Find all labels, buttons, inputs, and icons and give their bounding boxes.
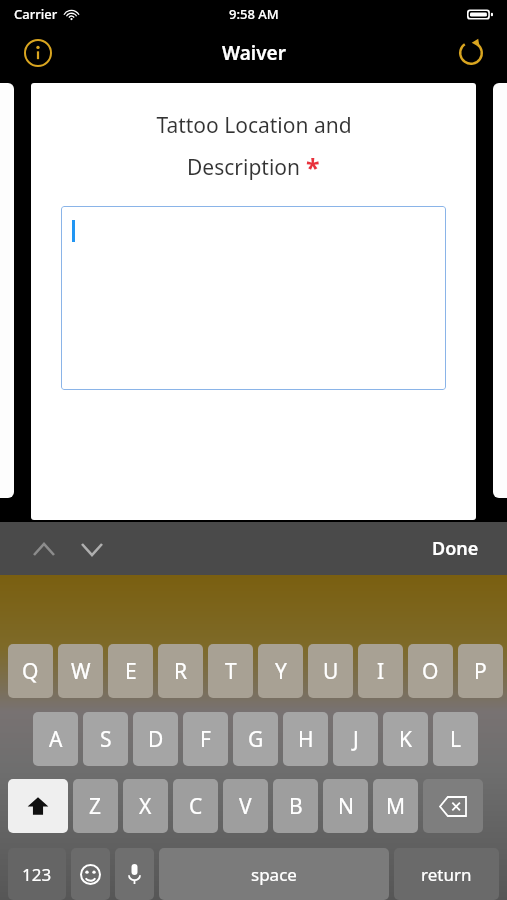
button[interactable]: G [233,712,278,766]
staticText: W [71,657,91,686]
button[interactable]: Z [73,779,118,833]
button[interactable]: T [208,644,253,698]
button[interactable]: C [173,779,218,833]
staticText: I [377,657,385,686]
button[interactable]: F [183,712,228,766]
staticText: M [386,792,406,821]
button[interactable]: Information [16,31,60,75]
staticText: space [251,863,297,886]
staticText: return [421,863,472,886]
button[interactable]: W [58,644,103,698]
staticText: A [49,725,63,754]
staticText: Y [275,657,287,686]
button[interactable]: D [133,712,178,766]
staticText: Q [22,657,39,686]
staticText: R [174,657,188,686]
staticText: V [239,792,252,821]
staticText: C [189,792,203,821]
staticText: L [450,725,462,754]
button[interactable]: Previous field [22,527,66,571]
button[interactable]: P [458,644,503,698]
staticText: 123 [22,863,52,886]
staticText: O [422,657,439,686]
button[interactable]: A [33,712,78,766]
button[interactable]: Refresh [449,31,493,75]
button[interactable]: V [223,779,268,833]
button[interactable]: N [323,779,368,833]
button[interactable] [61,206,446,390]
staticText: T [225,657,237,686]
staticText: H [298,725,314,754]
staticText: P [474,657,487,686]
button[interactable]: return [394,848,499,900]
button[interactable]: J [333,712,378,766]
button[interactable]: K [383,712,428,766]
staticText: Description [187,153,306,182]
button[interactable]: Emoji [71,848,110,900]
staticText: D [148,725,164,754]
button[interactable]: B [273,779,318,833]
button[interactable]: L [433,712,478,766]
button[interactable]: E [108,644,153,698]
staticText: U [323,657,339,686]
staticText: Waiver [222,40,286,66]
button[interactable]: Backspace [423,779,483,833]
staticText: S [100,725,112,754]
button[interactable]: Done [426,528,485,569]
staticText: E [125,657,137,686]
staticText: Tattoo Location and [156,111,352,140]
staticText: X [139,792,152,821]
staticText: * [306,150,320,184]
staticText: J [353,725,359,754]
button[interactable]: Dictation [115,848,154,900]
button[interactable]: X [123,779,168,833]
button[interactable]: O [408,644,453,698]
staticText: F [200,725,211,754]
staticText: Z [89,792,102,821]
button[interactable]: Shift [8,779,68,833]
button[interactable]: 123 [8,848,66,900]
button[interactable]: I [358,644,403,698]
staticText: K [399,725,412,754]
staticText: G [248,725,264,754]
button[interactable]: R [158,644,203,698]
button[interactable]: space [159,848,389,900]
button[interactable]: Y [258,644,303,698]
staticText: N [338,792,354,821]
button[interactable]: M [373,779,418,833]
staticText: B [289,792,303,821]
button[interactable]: U [308,644,353,698]
button[interactable]: S [83,712,128,766]
button[interactable]: Q [8,644,53,698]
staticText: Carrier [14,5,58,23]
button[interactable]: H [283,712,328,766]
button[interactable]: Next field [70,527,114,571]
staticText: Done [432,536,479,561]
staticText: 9:58 AM [229,5,279,23]
